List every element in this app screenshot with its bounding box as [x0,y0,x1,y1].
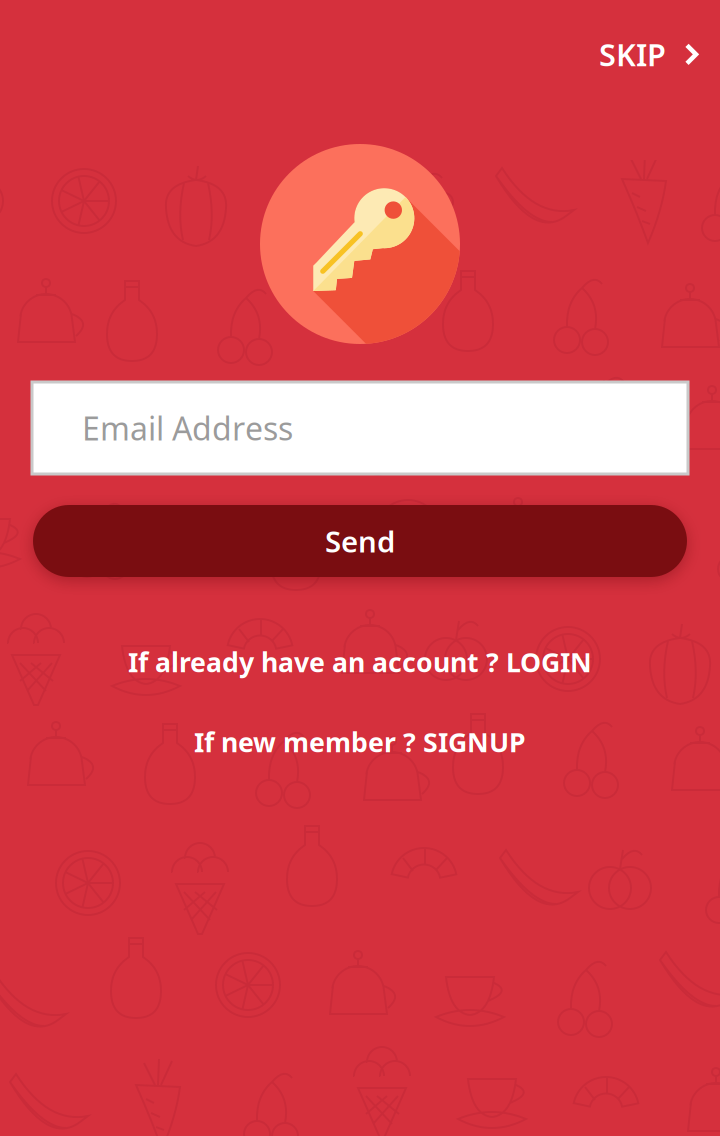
staticText: If new member ? SIGNUP [194,724,526,760]
staticText: Email Address [82,407,293,449]
button[interactable]: If new member ? SIGNUP [0,722,720,762]
button[interactable]: Skip [577,17,720,92]
staticText: If already have an account ? LOGIN [128,644,592,680]
staticText: Send [325,521,395,560]
staticText: SKIP [599,34,666,75]
button[interactable]: If already have an account ? LOGIN [0,642,720,682]
button[interactable]: Send [33,505,687,577]
